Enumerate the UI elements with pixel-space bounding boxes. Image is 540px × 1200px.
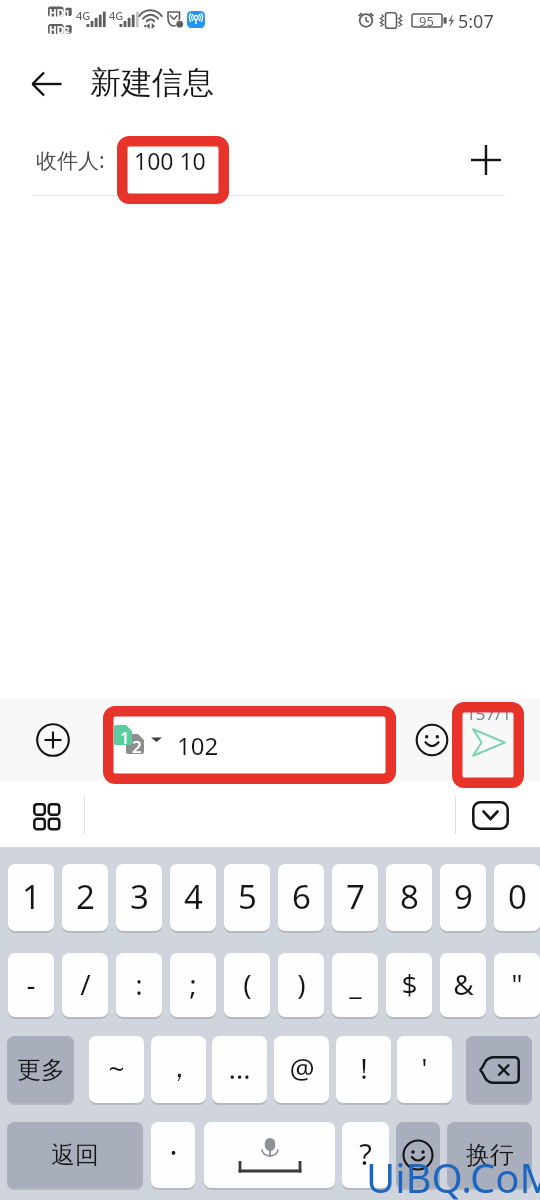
button[interactable]: 0 [494,864,540,931]
staticText: $ [401,965,418,1003]
button[interactable]: ， [151,1036,206,1103]
button[interactable]: 5 [224,864,270,931]
staticText: 0 [508,874,527,919]
button[interactable]: : [116,953,162,1017]
button[interactable]: Space [204,1122,335,1188]
staticText: ( [243,965,252,1003]
button[interactable]: Emoji keyboard [396,1122,440,1188]
button[interactable]: ? [342,1122,389,1188]
button[interactable]: ; [170,953,216,1017]
staticText: 1 [65,7,70,18]
staticText: ) [297,965,306,1003]
staticText: 2 [132,735,142,758]
staticText: 5 [238,874,257,919]
staticText: 1 [22,874,41,919]
button[interactable]: 9 [440,864,486,931]
button[interactable]: ( [224,953,270,1017]
staticText: & [453,965,474,1003]
staticText: 6 [292,874,311,919]
staticText: ， [165,1050,193,1085]
staticText: HD [49,6,64,20]
button[interactable]: ! [336,1036,391,1103]
button[interactable]: 2 [62,864,108,931]
staticText: 7 [346,874,365,919]
staticText: _ [349,965,362,1003]
button[interactable]: 更多 [7,1036,74,1103]
staticText: … [228,1049,251,1087]
button[interactable]: Back [22,59,72,109]
button[interactable]: Hide keyboard [462,790,518,840]
button[interactable]: 换行 [447,1122,532,1188]
staticText: 95 [419,12,434,30]
button[interactable]: Add attachment [30,717,76,763]
button[interactable]: ~ [89,1036,144,1103]
button[interactable]: / [62,953,108,1017]
staticText: / [80,965,91,1003]
staticText: 2 [76,874,95,919]
staticText: 新建信息 [90,63,214,102]
button[interactable]: _ [332,953,378,1017]
button[interactable] [104,707,395,783]
staticText: ' [421,1049,428,1087]
button[interactable]: $ [386,953,432,1017]
staticText: 4 [184,874,203,919]
button[interactable]: 7 [332,864,378,931]
staticText: - [26,965,36,1003]
staticText: 157/1 [466,702,512,725]
staticText: 4G [109,8,124,23]
staticText: 返回 [51,1140,99,1170]
button[interactable]: · [151,1122,195,1188]
button[interactable]: 1 [8,864,54,931]
staticText: @ [289,1049,315,1087]
button[interactable]: 返回 [7,1122,143,1188]
staticText: · [169,1132,178,1173]
staticText: 8 [400,874,419,919]
staticText: 5:07 [458,9,494,34]
button[interactable]: … [212,1036,267,1103]
button[interactable]: Apps [20,790,70,840]
button[interactable]: 4 [170,864,216,931]
button[interactable]: & [440,953,486,1017]
staticText: 更多 [17,1055,65,1085]
button[interactable]: 3 [116,864,162,931]
staticText: ~ [108,1049,125,1087]
staticText: 4G [76,8,91,23]
staticText: 换行 [466,1140,514,1170]
staticText: 收件人: [36,146,105,175]
staticText: ! [360,1049,368,1087]
staticText: UiBQ.CoM [366,1150,540,1200]
staticText: 100 10 [134,145,206,176]
staticText: 1 [120,726,130,749]
button[interactable]: Send [466,722,512,762]
button[interactable]: Add recipient [460,134,512,186]
staticText: HD [49,23,64,37]
button[interactable]: 6 [278,864,324,931]
button[interactable]: " [494,953,540,1017]
staticText: 9 [454,874,473,919]
staticText: " [511,965,523,1003]
button[interactable]: - [8,953,54,1017]
staticText: 3 [130,874,149,919]
staticText: 102 [177,729,219,762]
staticText: 2 [65,24,70,35]
staticText: ? [359,1134,372,1173]
staticText: : [135,965,143,1003]
button[interactable]: @ [274,1036,329,1103]
button[interactable]: Emoji [409,717,455,763]
staticText: ; [189,965,197,1003]
button[interactable]: ) [278,953,324,1017]
button[interactable]: ' [397,1036,452,1103]
button[interactable]: 8 [386,864,432,931]
button[interactable]: Backspace [466,1036,532,1103]
